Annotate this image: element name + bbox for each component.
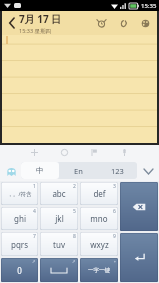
staticText: En xyxy=(74,166,83,176)
button[interactable]: Attach xyxy=(116,16,130,30)
button[interactable]: 中 xyxy=(21,162,59,179)
staticText: abc xyxy=(52,188,66,199)
button[interactable]: 8 xyxy=(40,232,78,256)
staticText: def xyxy=(93,188,106,199)
button[interactable]: Emoji xyxy=(58,146,71,159)
staticText: 8 xyxy=(73,233,76,240)
button[interactable]: En xyxy=(59,162,98,179)
staticText: 9 xyxy=(113,233,116,240)
button[interactable]: 1 xyxy=(1,182,38,205)
button[interactable]: Input method xyxy=(3,163,19,179)
staticText: ghi xyxy=(14,213,26,224)
button[interactable]: More xyxy=(138,16,152,30)
button[interactable]: 123 xyxy=(98,162,137,179)
staticText: 123 xyxy=(111,166,124,176)
button[interactable]: Voice input xyxy=(118,146,131,159)
staticText: 中 xyxy=(36,166,44,175)
staticText: 0 xyxy=(17,265,22,276)
staticText: jkl xyxy=(55,213,64,224)
button[interactable]: 7 xyxy=(1,232,38,256)
staticText: wxyz xyxy=(90,239,109,250)
staticText: 15:35 xyxy=(141,2,157,10)
button[interactable]: Clipboard xyxy=(88,146,101,159)
staticText: ↗ xyxy=(72,259,76,264)
button[interactable]: 5 xyxy=(40,207,78,230)
button[interactable]: Enter xyxy=(120,233,158,282)
button[interactable]: 2 xyxy=(40,182,78,205)
button[interactable]: 3 xyxy=(80,182,118,205)
button[interactable]: Alarm xyxy=(94,16,108,30)
staticText: 2 xyxy=(73,183,76,190)
staticText: 1 xyxy=(33,183,36,190)
button[interactable]: Move cursor xyxy=(28,146,41,159)
staticText: 7月 17 日 xyxy=(19,12,62,26)
button[interactable]: ↗ xyxy=(40,258,78,282)
staticText: 6 xyxy=(113,208,116,215)
staticText: mno xyxy=(90,213,108,224)
button[interactable]: • xyxy=(80,258,118,282)
button[interactable]: Backspace xyxy=(120,182,158,231)
button[interactable]: Hide keyboard xyxy=(140,163,156,179)
button[interactable]: 9 xyxy=(80,232,118,256)
staticText: 一字一键 xyxy=(88,267,110,274)
button[interactable]: Back xyxy=(5,12,18,34)
staticText: ，。/符含 xyxy=(7,190,32,198)
staticText: 5 xyxy=(73,208,76,215)
staticText: • xyxy=(114,259,116,265)
staticText: 3 xyxy=(113,183,116,190)
button[interactable]: 4 xyxy=(1,207,38,230)
staticText: pqrs xyxy=(11,239,28,250)
staticText: 7 xyxy=(33,233,36,240)
staticText: 4 xyxy=(33,208,36,215)
staticText: tuv xyxy=(53,239,65,250)
button[interactable]: ↗ xyxy=(1,258,38,282)
staticText: 15:33 星期四 xyxy=(19,27,51,35)
staticText: ↗ xyxy=(32,259,36,264)
button[interactable]: 6 xyxy=(80,207,118,230)
